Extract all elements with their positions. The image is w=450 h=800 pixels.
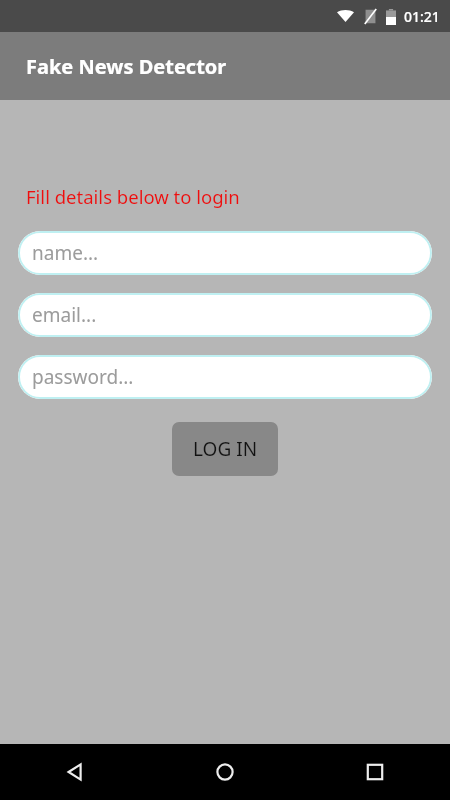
- button[interactable]: LOG IN: [172, 422, 278, 476]
- staticText: 01:21: [404, 7, 440, 26]
- staticText: LOG IN: [193, 436, 258, 462]
- staticText: Fill details below to login: [26, 184, 240, 209]
- button[interactable]: email...: [18, 293, 432, 337]
- button[interactable]: Back: [0, 744, 150, 800]
- button[interactable]: name...: [18, 231, 432, 275]
- button[interactable]: password...: [18, 355, 432, 399]
- staticText: Fake News Detector: [26, 53, 227, 80]
- staticText: email...: [32, 302, 97, 328]
- button[interactable]: Recent apps: [300, 744, 450, 800]
- staticText: password...: [32, 364, 134, 390]
- button[interactable]: Home: [150, 744, 300, 800]
- staticText: name...: [32, 240, 99, 266]
